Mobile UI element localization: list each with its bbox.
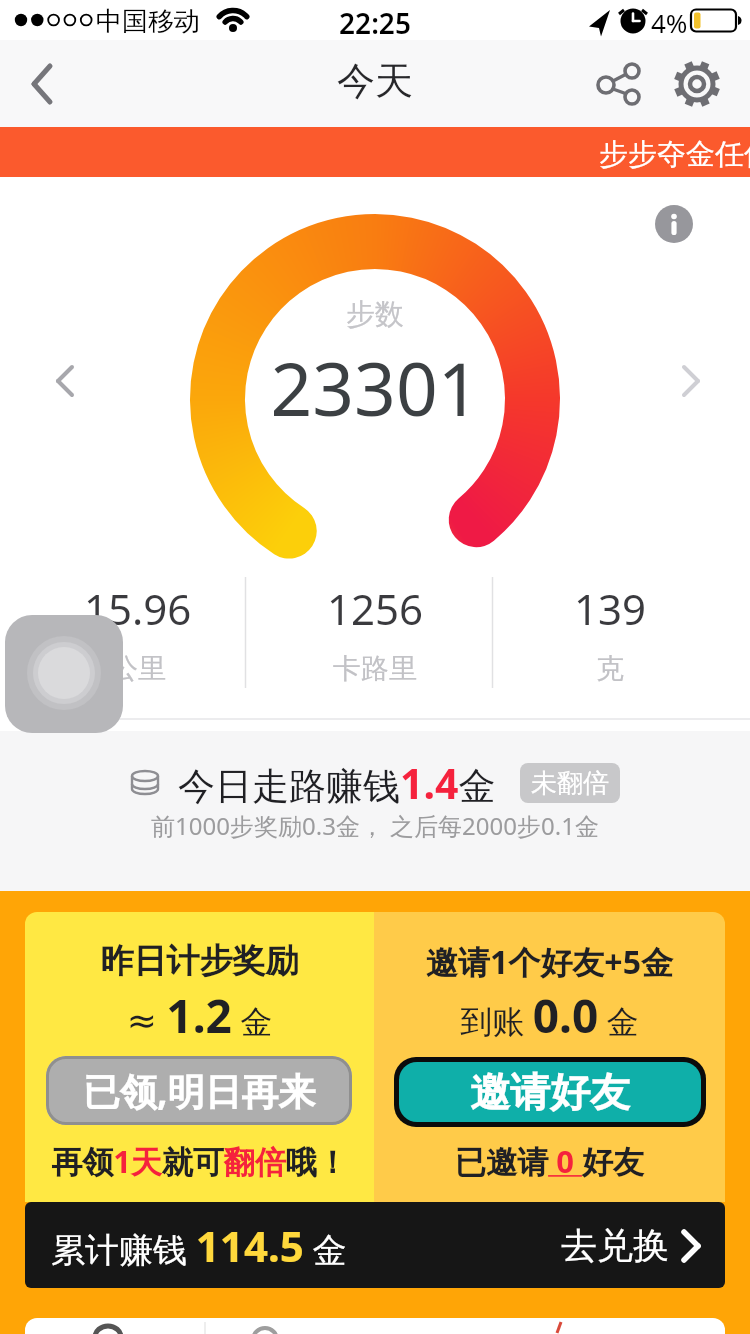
staticText: 到账 0.0 金 [374,984,725,1047]
staticText: 昨日计步奖励 [25,940,374,982]
staticText: 卡路里 [333,651,417,686]
staticText: 公里 [110,651,166,686]
staticText: 已领,明日再来 [83,1065,316,1116]
staticText: 1256 [327,580,424,636]
staticText: 已邀请 0 好友 [374,1140,725,1182]
button[interactable]: 累计赚钱 114.5 金 [25,1202,725,1288]
staticText: 去兑换 [561,1223,669,1268]
button[interactable]: 邀请好友 [394,1057,706,1127]
staticText: 再领1天就可翻倍哦！ [25,1140,374,1182]
button[interactable]: 已领,明日再来 [46,1056,352,1125]
staticText: 未翻倍 [531,767,609,800]
staticText: 克 [596,651,624,686]
button[interactable] [650,200,698,248]
staticText: 今天 [0,57,750,105]
staticText: 22:25 [0,4,750,42]
staticText: 步数 [0,296,750,333]
staticText: 23301 [0,338,750,437]
staticText: 4% [651,5,688,40]
button[interactable] [587,54,647,114]
button[interactable] [668,355,716,407]
staticText: 前1000步奖励0.3金， 之后每2000步0.1金 [0,809,750,842]
staticText: ≈ 1.2 金 [25,984,374,1047]
staticText: 邀请1个好友+5金 [374,940,725,984]
button[interactable] [40,355,88,407]
staticText: 15.96 [84,580,192,636]
staticText: 今日走路赚钱1.4金 [178,755,496,811]
staticText: 累计赚钱 114.5 金 [51,1217,347,1274]
staticText: 中国移动 [96,5,200,38]
button[interactable] [10,50,70,117]
staticText: 邀请好友 [470,1067,630,1117]
button[interactable] [25,1318,725,1334]
staticText: 139 [574,580,647,636]
button[interactable]: 步步夺金任何 [0,127,750,177]
button[interactable]: 未翻倍 [520,763,620,803]
staticText: 步步夺金任何 [599,136,750,173]
button[interactable] [667,54,727,114]
